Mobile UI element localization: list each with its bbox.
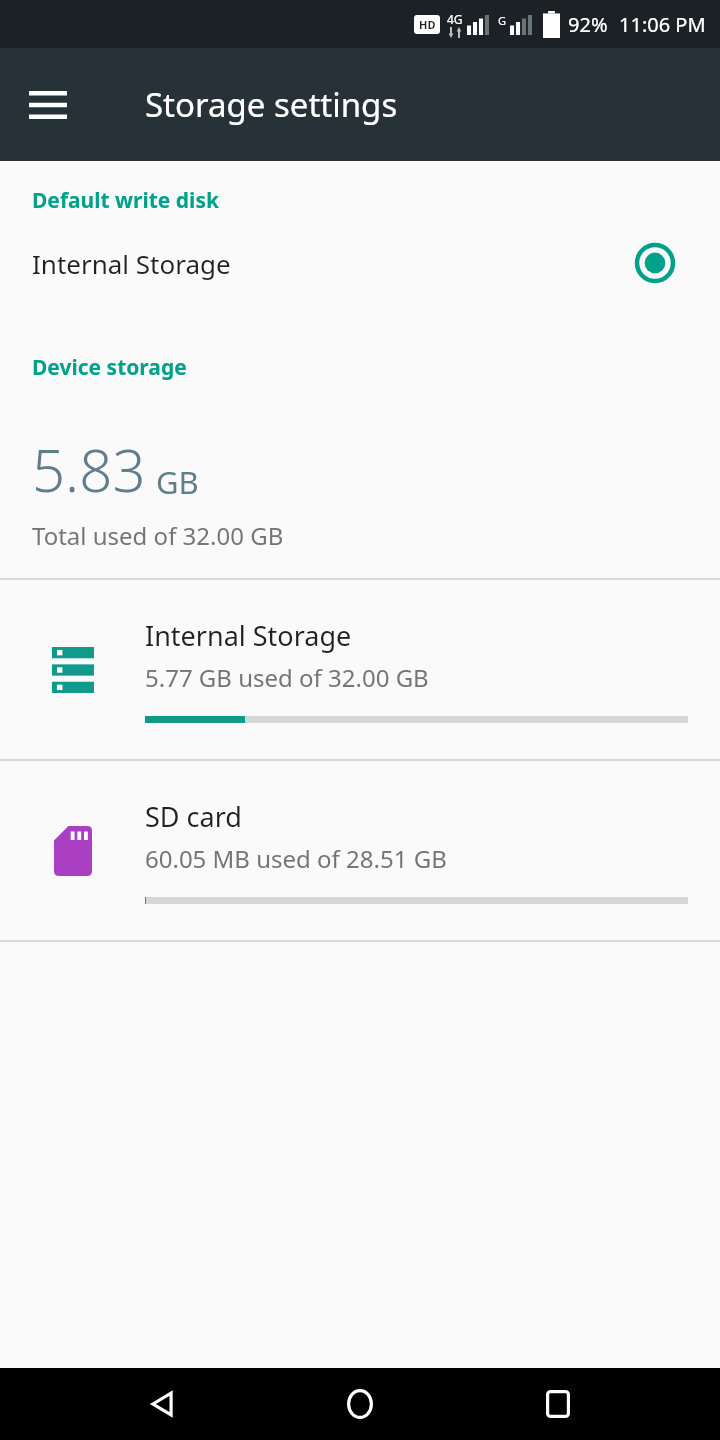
staticText: SD card: [145, 798, 242, 835]
staticText: GB: [156, 461, 199, 503]
staticText: Device storage: [32, 353, 187, 382]
button[interactable]: Home: [324, 1368, 396, 1440]
staticText: 5.83: [32, 430, 146, 509]
staticText: Internal Storage: [145, 617, 352, 654]
button[interactable]: Open navigation menu: [20, 77, 76, 133]
button[interactable]: Internal Storage: [0, 580, 720, 759]
staticText: G: [498, 13, 507, 28]
staticText: 60.05 MB used of 28.51 GB: [145, 842, 447, 875]
staticText: Default write disk: [32, 186, 219, 215]
staticText: 5.77 GB used of 32.00 GB: [145, 661, 429, 694]
button[interactable]: Internal Storage: [0, 215, 720, 311]
staticText: 92%: [568, 11, 608, 38]
staticText: 11:06 PM: [619, 11, 706, 38]
button[interactable]: Back: [126, 1368, 198, 1440]
button[interactable]: Recent apps: [522, 1368, 594, 1440]
staticText: Total used of 32.00 GB: [32, 519, 284, 552]
staticText: Internal Storage: [32, 246, 231, 281]
staticText: HD: [419, 17, 436, 32]
staticText: Storage settings: [145, 82, 398, 127]
staticText: 4G: [447, 11, 463, 27]
button[interactable]: SD card: [0, 761, 720, 940]
